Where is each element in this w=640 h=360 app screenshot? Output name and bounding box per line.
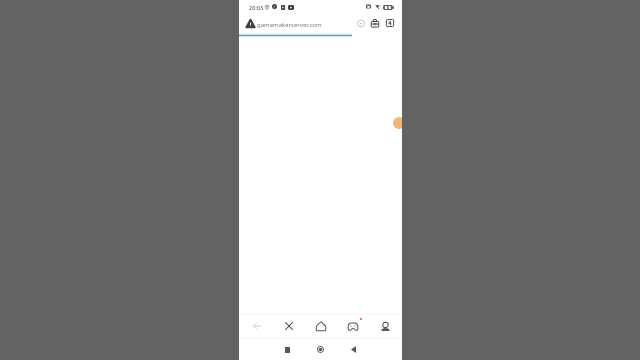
button[interactable]: Stop loading [355,16,367,30]
button[interactable]: Home [304,314,337,338]
button[interactable]: Back [240,314,273,338]
button[interactable]: Games [336,314,369,338]
button[interactable]: Profile [369,314,402,338]
button[interactable]: gamemakerserver.com [243,16,353,32]
button[interactable]: Back [346,340,361,358]
staticText: gamemakerserver.com [257,21,322,29]
staticText: 20:03 [249,4,264,12]
button[interactable]: Stop loading [272,314,305,338]
button[interactable]: Home [313,340,328,358]
button[interactable]: Chat [393,117,402,129]
button[interactable]: Tabs, 4 open [384,16,396,30]
button[interactable]: Downloads [369,16,381,30]
button[interactable]: Recent apps [280,340,295,358]
